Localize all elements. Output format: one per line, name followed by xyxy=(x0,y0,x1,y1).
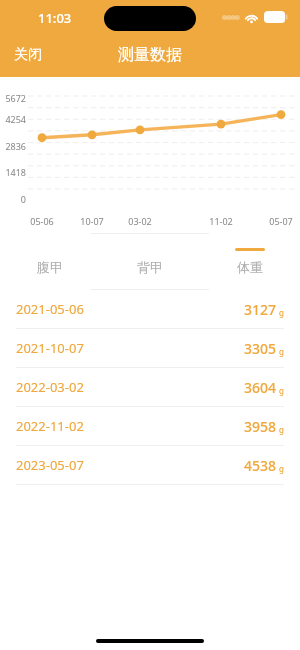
button[interactable]: 腹甲 xyxy=(0,233,100,290)
staticText: 3958 xyxy=(244,417,277,436)
staticText: 3127 xyxy=(244,300,277,319)
staticText: 2022-03-02 xyxy=(16,378,84,396)
staticText: 3305 xyxy=(244,339,277,358)
staticText: 0 xyxy=(20,193,26,205)
staticText: 2021-05-06 xyxy=(16,300,84,318)
staticText: g xyxy=(279,307,284,318)
staticText: 背甲 xyxy=(137,259,163,275)
staticText: 11-02 xyxy=(209,215,233,227)
staticText: 2022-11-02 xyxy=(16,417,84,435)
staticText: 3604 xyxy=(244,378,277,397)
staticText: 2836 xyxy=(5,140,26,152)
staticText: g xyxy=(279,385,284,396)
staticText: 4538 xyxy=(244,456,277,475)
staticText: g xyxy=(279,463,284,474)
staticText: 10-07 xyxy=(80,215,104,227)
button[interactable]: 2022-03-02 xyxy=(0,368,300,407)
button[interactable]: 2021-05-06 xyxy=(0,290,300,329)
staticText: 测量数据 xyxy=(118,45,182,65)
staticText: g xyxy=(279,346,284,357)
button[interactable]: 2021-10-07 xyxy=(0,329,300,368)
staticText: 4254 xyxy=(5,113,26,125)
staticText: 2021-10-07 xyxy=(16,339,84,357)
staticText: 03-02 xyxy=(128,215,152,227)
staticText: 腹甲 xyxy=(37,259,63,275)
staticText: g xyxy=(279,424,284,435)
staticText: 2023-05-07 xyxy=(16,456,84,474)
staticText: 11:03 xyxy=(38,9,72,27)
staticText: 体重 xyxy=(237,259,263,275)
staticText: 1418 xyxy=(5,166,26,178)
button[interactable]: 背甲 xyxy=(100,233,200,290)
button[interactable]: 2023-05-07 xyxy=(0,446,300,485)
staticText: 05-06 xyxy=(30,215,54,227)
button[interactable]: 关闭 xyxy=(14,46,42,64)
button[interactable]: 2022-11-02 xyxy=(0,407,300,446)
staticText: 05-07 xyxy=(269,215,293,227)
button[interactable]: 体重 xyxy=(200,233,300,290)
staticText: 5672 xyxy=(5,92,26,104)
